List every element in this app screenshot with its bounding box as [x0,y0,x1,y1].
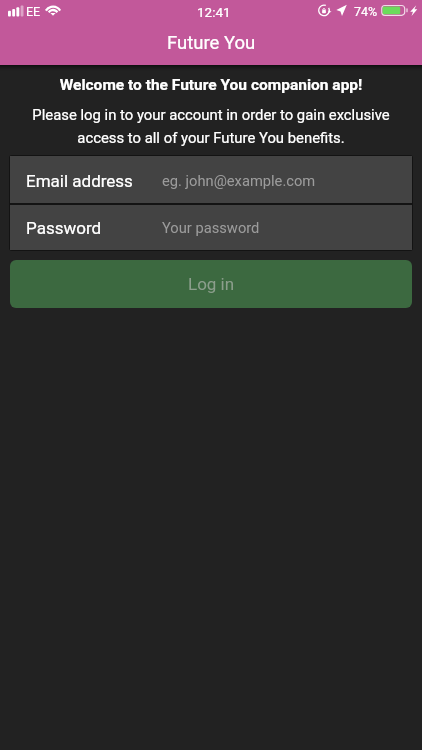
button[interactable]: Log in [10,260,412,308]
staticText: Log in [188,274,235,294]
button[interactable]: Password [10,205,412,250]
staticText: Please log in to your account in order t… [10,106,412,147]
button[interactable]: Email address [10,156,412,203]
staticText: 74% [354,4,378,19]
staticText: Password [26,218,102,238]
other: Status bar [0,0,422,23]
staticText: EE [26,4,41,19]
staticText: Future You [167,32,256,54]
staticText: eg. john@example.com [162,172,316,189]
staticText: Your password [162,219,260,236]
staticText: 12:41 [197,4,231,20]
staticText: Email address [26,171,133,191]
staticText: Welcome to the Future You companion app! [0,76,422,94]
